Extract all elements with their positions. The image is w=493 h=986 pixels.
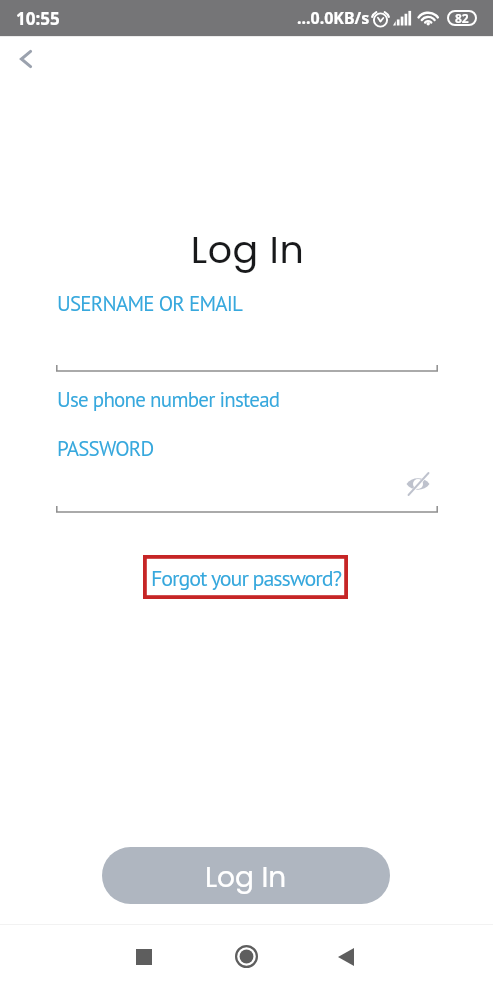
button[interactable]: Forgot your password? — [143, 555, 348, 599]
button[interactable]: Back — [4, 37, 48, 81]
staticText: ...0.0KB/s — [297, 7, 370, 29]
staticText: USERNAME OR EMAIL — [57, 290, 243, 317]
button[interactable]: Back — [322, 933, 370, 981]
button[interactable]: Recents — [120, 933, 168, 981]
staticText: Log In — [1, 223, 493, 276]
staticText: Log In — [205, 858, 287, 897]
staticText: Forgot your password? — [151, 564, 342, 592]
staticText: 82 — [455, 10, 469, 26]
button[interactable]: Use phone number instead — [57, 386, 280, 413]
staticText: 10:55 — [16, 7, 60, 30]
button[interactable]: Home — [222, 932, 270, 980]
staticText: PASSWORD — [57, 435, 154, 462]
button[interactable]: Show password — [398, 464, 438, 504]
button[interactable]: Log In — [102, 847, 390, 904]
